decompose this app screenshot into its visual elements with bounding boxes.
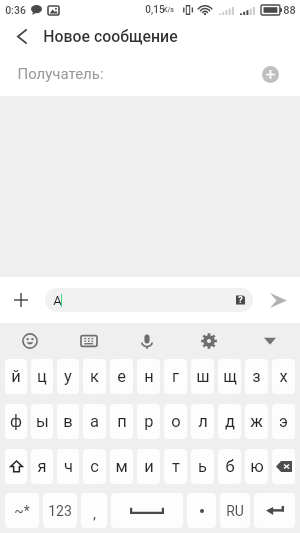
button[interactable]: б — [218, 449, 241, 484]
staticText: т — [172, 457, 180, 476]
staticText: р — [144, 412, 154, 431]
staticText: ч — [64, 457, 73, 476]
button[interactable]: у — [57, 359, 79, 394]
staticText: , — [93, 505, 96, 523]
staticText: ~* — [14, 503, 30, 519]
staticText: л — [198, 412, 208, 431]
button[interactable]: Attach — [5, 284, 37, 316]
staticText: ю — [250, 457, 264, 476]
button[interactable]: м — [110, 449, 133, 484]
button[interactable]: й — [5, 359, 27, 394]
button[interactable]: п — [110, 404, 133, 439]
staticText: о — [171, 412, 181, 431]
button[interactable]: Voice input — [131, 325, 163, 357]
staticText: у — [64, 367, 72, 386]
button[interactable]: Shift — [5, 449, 27, 484]
staticText: ы — [36, 412, 49, 431]
button[interactable]: ы — [31, 404, 53, 439]
button[interactable]: н — [137, 359, 160, 394]
staticText: ? — [238, 295, 243, 306]
staticText: с — [90, 457, 99, 476]
staticText: ф — [10, 412, 22, 431]
button[interactable]: к — [83, 359, 106, 394]
button[interactable]: э — [272, 404, 295, 439]
button[interactable]: Backspace — [272, 449, 295, 484]
staticText: д — [225, 412, 235, 431]
button[interactable]: ч — [57, 449, 79, 484]
staticText: х — [279, 367, 288, 386]
button[interactable]: е — [110, 359, 133, 394]
button[interactable] — [187, 493, 216, 528]
button[interactable]: Space — [111, 493, 183, 528]
staticText: K/s — [163, 6, 174, 14]
staticText: п — [117, 412, 127, 431]
staticText: м — [115, 457, 128, 476]
button[interactable]: л — [191, 404, 214, 439]
staticText: ж — [250, 412, 263, 431]
button[interactable]: ю — [245, 449, 268, 484]
button[interactable]: ь — [191, 449, 214, 484]
staticText: а — [90, 412, 99, 431]
staticText: г — [172, 367, 179, 386]
staticText: RU — [226, 503, 244, 519]
button[interactable]: в — [57, 404, 79, 439]
staticText: ш — [196, 367, 210, 386]
button[interactable]: о — [164, 404, 187, 439]
button[interactable]: Hide keyboard — [254, 325, 286, 357]
staticText: й — [11, 367, 21, 386]
staticText: 123 — [48, 503, 72, 519]
staticText: к — [90, 367, 99, 386]
button[interactable]: Add recipient — [253, 57, 287, 91]
staticText: б — [225, 457, 235, 476]
button[interactable]: х — [272, 359, 295, 394]
staticText: е — [117, 367, 126, 386]
button[interactable]: ш — [191, 359, 214, 394]
button[interactable]: Keyboard — [73, 325, 105, 357]
button[interactable]: Settings — [193, 325, 225, 357]
staticText: в — [63, 412, 73, 431]
button[interactable]: р — [137, 404, 160, 439]
button[interactable]: з — [245, 359, 268, 394]
button[interactable]: ~* — [5, 493, 39, 528]
staticText: 0,15 — [145, 4, 165, 16]
button[interactable]: т — [164, 449, 187, 484]
staticText: я — [37, 457, 47, 476]
staticText: 0:36 — [5, 4, 26, 16]
staticText: и — [144, 457, 154, 476]
button[interactable]: Emoji — [14, 325, 46, 357]
button[interactable]: и — [137, 449, 160, 484]
button[interactable]: я — [31, 449, 53, 484]
staticText: э — [279, 412, 288, 431]
staticText: ь — [198, 457, 207, 476]
button[interactable]: щ — [218, 359, 241, 394]
staticText: Получатель: — [17, 65, 104, 83]
button[interactable]: ц — [31, 359, 53, 394]
button[interactable]: Back — [0, 20, 42, 52]
staticText: з — [252, 367, 261, 386]
button[interactable]: а — [83, 404, 106, 439]
button[interactable]: ф — [5, 404, 27, 439]
button[interactable]: ж — [245, 404, 268, 439]
button[interactable]: 123 — [43, 493, 77, 528]
staticText: A — [53, 293, 62, 308]
staticText: ц — [37, 367, 47, 386]
staticText: 88 — [283, 4, 296, 17]
button[interactable]: RU — [220, 493, 250, 528]
button[interactable]: , — [81, 493, 107, 528]
staticText: щ — [223, 367, 237, 386]
button[interactable]: Enter — [254, 493, 295, 528]
button[interactable]: A — [45, 288, 253, 312]
staticText: н — [144, 367, 154, 386]
button[interactable]: Send — [261, 283, 295, 317]
button[interactable]: д — [218, 404, 241, 439]
staticText: Новое сообщение — [43, 27, 178, 46]
button[interactable]: с — [83, 449, 106, 484]
button[interactable]: г — [164, 359, 187, 394]
